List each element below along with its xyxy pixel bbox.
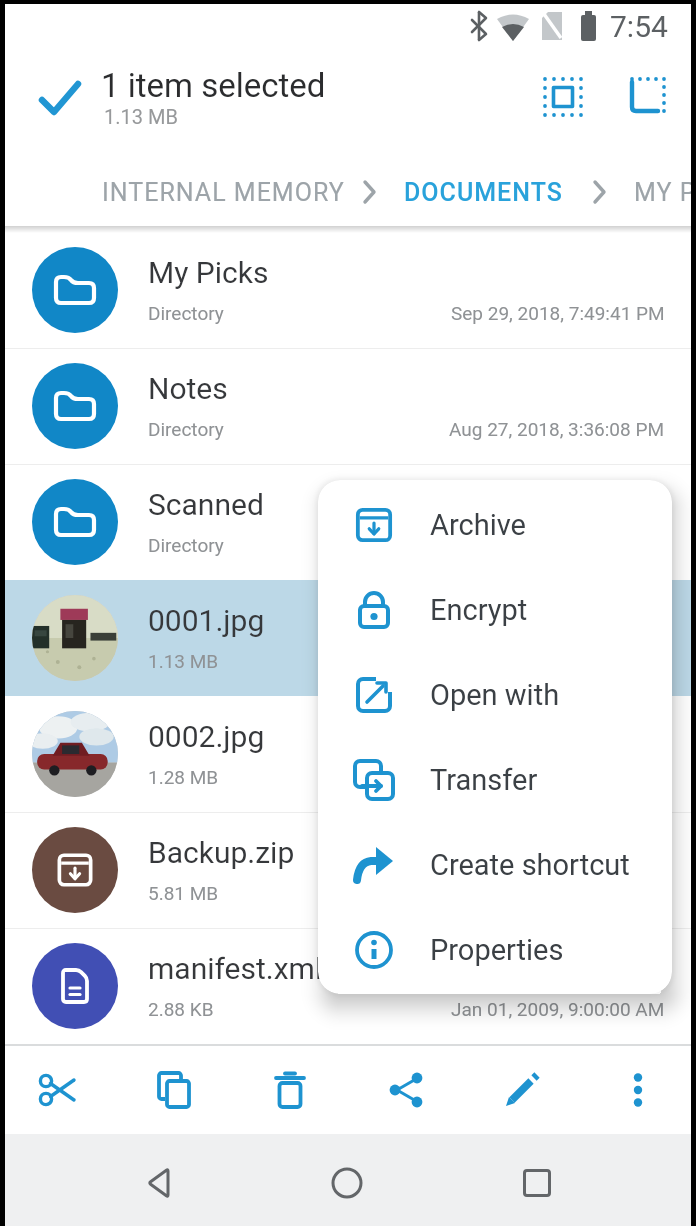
button[interactable]: [580, 1046, 696, 1134]
staticText: DOCUMENTS: [404, 178, 563, 207]
staticText: 1 item selected: [101, 66, 326, 105]
button[interactable]: DOCUMENTS: [404, 165, 574, 219]
button[interactable]: INTERNAL MEMORY: [102, 165, 362, 219]
button[interactable]: [0, 1046, 116, 1134]
button[interactable]: Open with: [318, 652, 672, 737]
button[interactable]: [38, 80, 82, 120]
staticText: Aug 27, 2018, 3:36:08 PM: [449, 418, 665, 440]
staticText: Transfer: [430, 763, 538, 797]
button[interactable]: [625, 72, 671, 118]
staticText: 5.81 MB: [148, 882, 219, 904]
button[interactable]: [507, 1153, 567, 1213]
button[interactable]: [348, 1046, 464, 1134]
button[interactable]: manifest.xml: [0, 928, 696, 1044]
button[interactable]: MY PH: [634, 165, 696, 219]
button[interactable]: Properties: [318, 907, 672, 992]
staticText: INTERNAL MEMORY: [102, 178, 345, 207]
button[interactable]: 0002.jpg: [0, 696, 696, 812]
staticText: 0001.jpg: [148, 603, 265, 638]
staticText: Directory: [148, 302, 224, 324]
button[interactable]: My Picks: [0, 232, 696, 348]
staticText: Archive: [430, 508, 526, 542]
button[interactable]: Transfer: [318, 737, 672, 822]
button[interactable]: [464, 1046, 580, 1134]
button[interactable]: [116, 1046, 232, 1134]
button[interactable]: Archive: [318, 482, 672, 567]
button[interactable]: [540, 74, 586, 120]
staticText: MY PH: [634, 178, 696, 207]
staticText: 1.13 MB: [104, 105, 178, 128]
staticText: Open with: [430, 678, 560, 712]
staticText: manifest.xml: [148, 951, 323, 986]
staticText: Notes: [148, 371, 228, 406]
staticText: 1.28 MB: [148, 766, 219, 788]
staticText: Directory: [148, 418, 224, 440]
button[interactable]: Create shortcut: [318, 822, 672, 907]
button[interactable]: Notes: [0, 348, 696, 464]
staticText: My Picks: [148, 255, 269, 290]
staticText: Encrypt: [430, 593, 528, 627]
button[interactable]: Encrypt: [318, 567, 672, 652]
staticText: Sep 29, 2018, 7:49:41 PM: [451, 302, 665, 324]
button[interactable]: [317, 1153, 377, 1213]
staticText: Directory: [148, 534, 224, 556]
button[interactable]: 0001.jpg: [0, 580, 696, 696]
button[interactable]: Scanned: [0, 464, 696, 580]
staticText: 7:54: [610, 9, 668, 44]
button[interactable]: Backup.zip: [0, 812, 696, 928]
button[interactable]: [130, 1153, 190, 1213]
staticText: Properties: [430, 933, 564, 967]
staticText: Scanned: [148, 487, 264, 522]
staticText: Backup.zip: [148, 835, 295, 870]
staticText: 2.88 KB: [148, 998, 214, 1020]
staticText: Jan 01, 2009, 9:00:00 AM: [451, 998, 665, 1020]
staticText: 0002.jpg: [148, 719, 265, 754]
staticText: 1.13 MB: [148, 650, 219, 672]
staticText: Create shortcut: [430, 848, 630, 882]
button[interactable]: [232, 1046, 348, 1134]
